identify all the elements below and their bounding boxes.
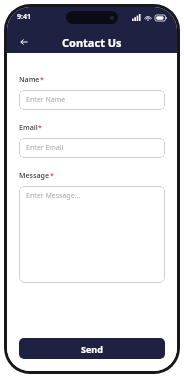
button[interactable]: Send xyxy=(19,338,165,359)
staticText: Message xyxy=(19,171,50,181)
staticText: Enter Email xyxy=(26,143,64,153)
button[interactable]: Enter Name xyxy=(19,90,165,110)
staticText: Send xyxy=(81,343,103,355)
button[interactable]: Back xyxy=(15,33,33,51)
staticText: Enter Message... xyxy=(26,191,81,201)
button[interactable]: Enter Email xyxy=(19,138,165,158)
staticText: * xyxy=(40,75,44,85)
button[interactable]: Enter Message... xyxy=(19,186,165,283)
staticText: Email xyxy=(19,123,38,133)
staticText: 9:41 xyxy=(17,12,31,22)
staticText: Enter Name xyxy=(26,95,66,105)
staticText: * xyxy=(50,171,54,181)
staticText: Contact Us xyxy=(62,35,122,50)
staticText: Name xyxy=(19,75,40,85)
staticText: * xyxy=(38,123,42,133)
